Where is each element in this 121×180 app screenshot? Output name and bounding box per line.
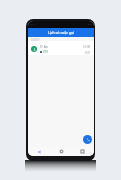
button[interactable]: Back	[35, 148, 42, 155]
button[interactable]: Recent apps	[79, 148, 86, 155]
staticText: Tr An	[40, 45, 48, 49]
staticText: 03/07	[31, 38, 40, 42]
staticText: 091	[43, 50, 49, 54]
button[interactable]: New call	[83, 135, 92, 144]
staticText: Lịch sử cuộc gọi	[48, 30, 74, 35]
staticText: 16:08	[83, 45, 91, 49]
staticText: 0:31	[85, 51, 91, 55]
button[interactable]: Home	[58, 148, 65, 155]
button[interactable]: Lịch sử cuộc gọi	[28, 28, 94, 37]
button[interactable]	[28, 41, 94, 55]
